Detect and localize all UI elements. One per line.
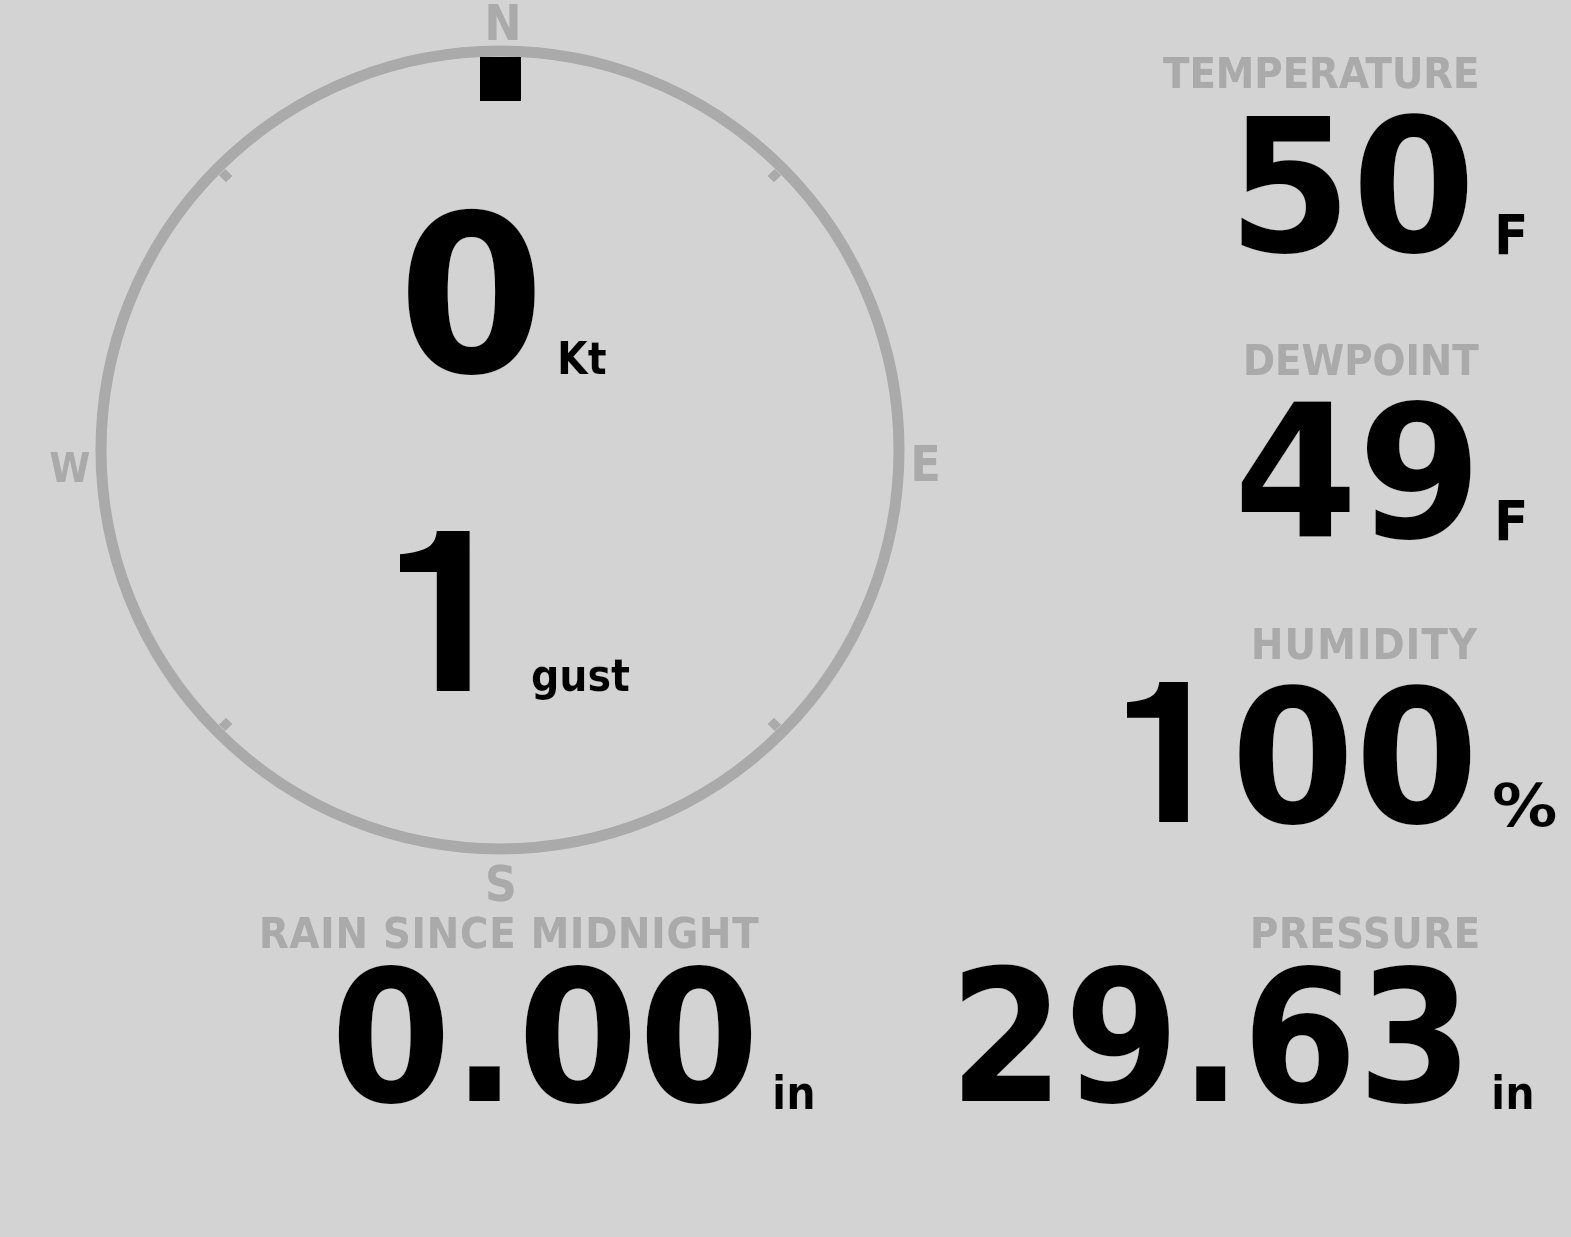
staticText: F <box>1494 202 1529 267</box>
staticText: in <box>1491 1066 1535 1120</box>
button[interactable]: Dewpoint 49 degrees Fahrenheit <box>1080 305 1571 575</box>
staticText: N <box>484 0 521 52</box>
staticText: 0.00 <box>331 930 760 1144</box>
staticText: DEWPOINT <box>1243 335 1479 385</box>
staticText: F <box>1494 488 1529 553</box>
staticText: Kt <box>557 333 607 384</box>
staticText: % <box>1492 772 1558 840</box>
staticText: 29.63 <box>949 930 1473 1144</box>
staticText: 0 <box>398 169 546 424</box>
button[interactable]: Temperature 50 degrees Fahrenheit <box>1080 20 1571 290</box>
staticText: 50 <box>1228 78 1476 295</box>
staticText: 00 <box>1231 649 1479 866</box>
staticText: 49 <box>1234 364 1482 581</box>
staticText: RAIN SINCE MIDNIGHT <box>259 908 760 958</box>
staticText: PRESSURE <box>1250 908 1481 958</box>
staticText: TEMPERATURE <box>1163 48 1480 98</box>
button[interactable]: Humidity 100 percent <box>1080 590 1571 860</box>
staticText: S <box>485 856 517 913</box>
staticText: W <box>49 444 90 492</box>
staticText: E <box>910 436 941 493</box>
staticText: in <box>772 1066 816 1120</box>
staticText: HUMIDITY <box>1251 619 1479 669</box>
button[interactable]: Wind: 0 knots, gusting 1, from the north <box>40 0 960 905</box>
button[interactable]: Pressure 29.63 inches <box>880 905 1571 1155</box>
staticText: gust <box>531 650 631 701</box>
button[interactable]: Rain since midnight 0.00 inches <box>180 905 860 1155</box>
